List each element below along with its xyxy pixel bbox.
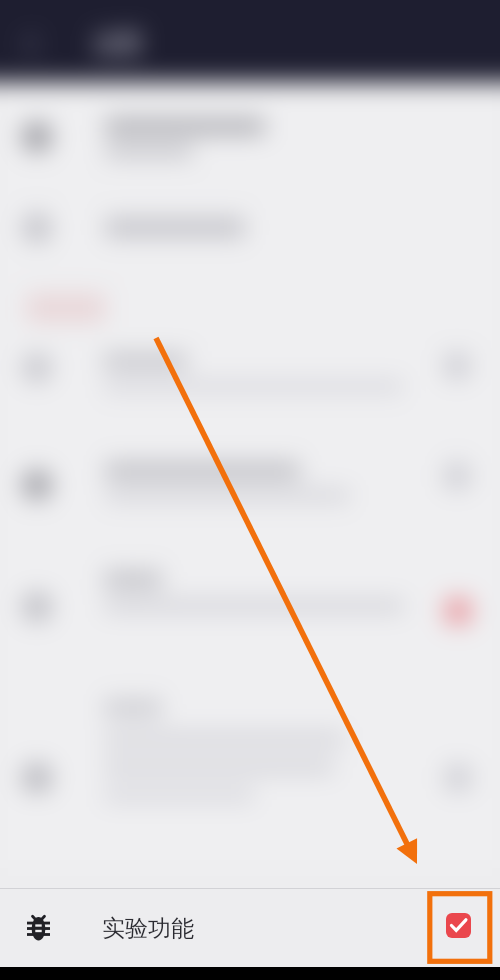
button[interactable]	[0, 278, 500, 334]
staticText: 设置	[94, 29, 142, 59]
button[interactable]	[0, 338, 500, 424]
button[interactable]	[0, 190, 500, 272]
button[interactable]	[0, 96, 500, 184]
button[interactable]: 实验功能	[0, 889, 500, 967]
button[interactable]	[0, 430, 500, 534]
button[interactable]: Enable experimental features	[446, 913, 471, 938]
button[interactable]	[0, 540, 500, 662]
staticText: 实验功能	[102, 914, 194, 943]
button[interactable]	[0, 668, 500, 868]
